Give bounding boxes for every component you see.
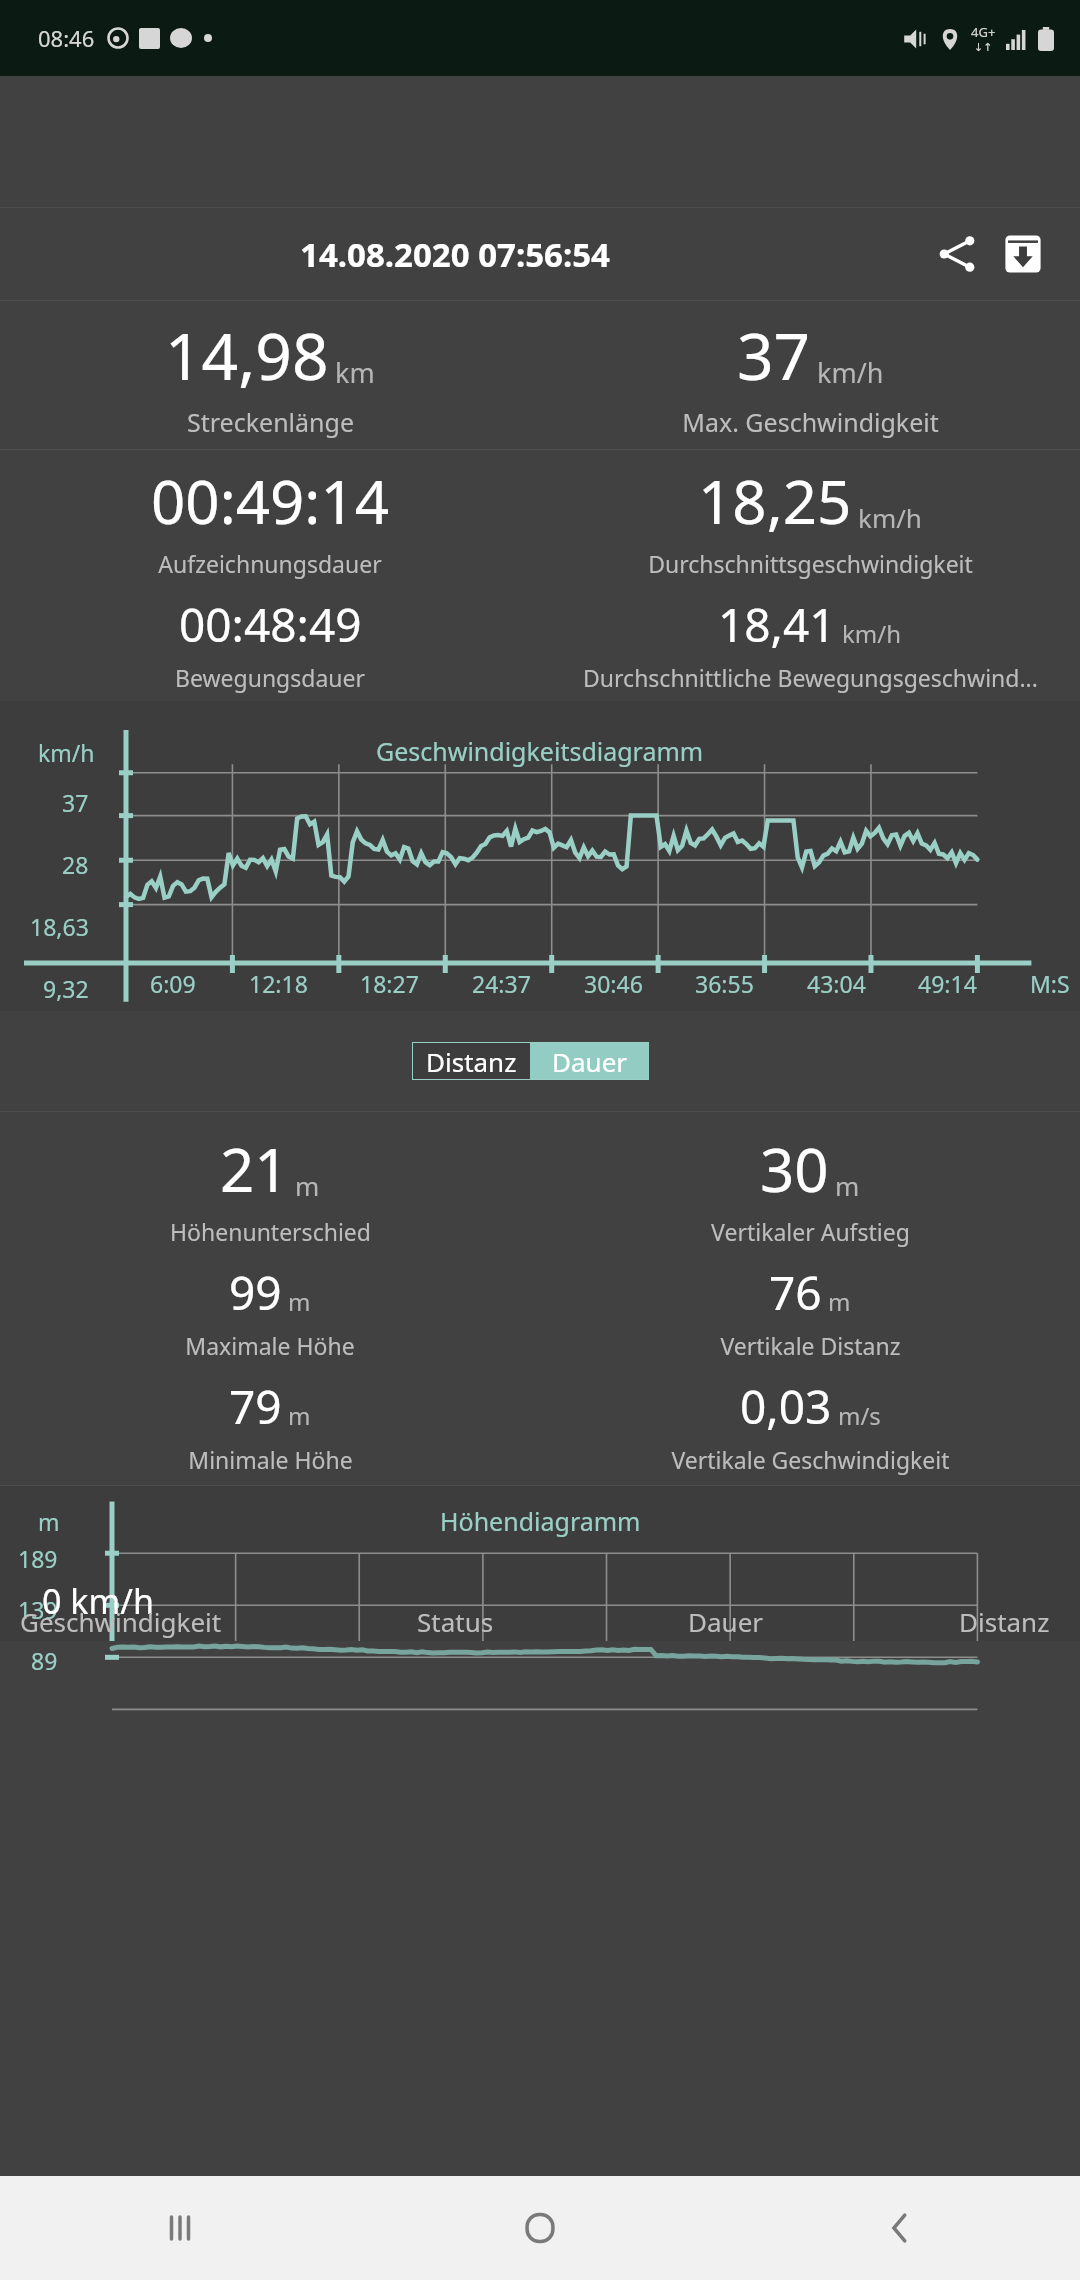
staticText: km/h	[817, 354, 884, 391]
staticText: km/h	[858, 500, 922, 535]
staticText: m	[288, 1285, 311, 1318]
staticText: 14.08.2020 07:56:54	[300, 232, 610, 277]
staticText: 99	[229, 1261, 282, 1324]
staticText: 30	[760, 1128, 829, 1210]
staticText: Maximale Höhe	[185, 1330, 355, 1361]
staticText: 08:46	[38, 23, 95, 53]
staticText: Höhenunterschied	[170, 1216, 371, 1247]
staticText: m	[288, 1399, 311, 1432]
staticText: 21	[220, 1128, 289, 1210]
staticText: km/h	[842, 617, 902, 650]
staticText: 9,32	[43, 973, 89, 1004]
button[interactable]: Home	[360, 2176, 720, 2280]
staticText: Vertikaler Aufstieg	[711, 1216, 910, 1247]
button[interactable]: Dauer	[530, 1042, 649, 1080]
staticText: 4G+	[971, 23, 996, 41]
staticText: Distanz	[959, 1604, 1050, 1639]
staticText: 28	[62, 849, 89, 880]
staticText: m	[38, 1506, 60, 1537]
staticText: Streckenlänge	[187, 405, 354, 439]
staticText: Minimale Höhe	[188, 1444, 353, 1475]
staticText: 14,98	[165, 312, 329, 399]
staticText: Distanz	[426, 1044, 517, 1079]
staticText: 89	[31, 1645, 58, 1676]
staticText: 18,25	[698, 460, 852, 542]
staticText: km	[335, 354, 375, 391]
staticText: 30:46	[584, 968, 643, 999]
staticText: Höhendiagramm	[440, 1504, 641, 1538]
staticText: 189	[18, 1543, 58, 1574]
staticText: Aufzeichnungsdauer	[158, 548, 382, 579]
staticText: 00:48:49	[179, 593, 362, 656]
staticText: Durchschnittliche Bewegungsgeschwind...	[583, 662, 1038, 693]
staticText: Geschwindigkeit	[20, 1604, 222, 1639]
staticText: Max. Geschwindigkeit	[682, 405, 939, 439]
staticText: ↓↑	[974, 41, 993, 54]
staticText: Status	[417, 1604, 494, 1639]
staticText: 18:27	[360, 968, 419, 999]
staticText: Dauer	[552, 1044, 628, 1079]
staticText: m	[828, 1285, 851, 1318]
staticText: 139	[18, 1594, 58, 1625]
staticText: 24:37	[472, 968, 531, 999]
button[interactable]: Download	[992, 223, 1054, 285]
staticText: 18,63	[30, 911, 89, 942]
staticText: m	[295, 1168, 320, 1203]
staticText: Bewegungsdauer	[175, 662, 365, 693]
staticText: 36:55	[695, 968, 754, 999]
staticText: 0 km/h	[42, 1578, 154, 1624]
staticText: Durchschnittsgeschwindigkeit	[648, 548, 973, 579]
staticText: 79	[229, 1375, 282, 1438]
staticText: 18,41	[718, 593, 836, 656]
staticText: 12:18	[249, 968, 308, 999]
button[interactable]: Recent apps	[0, 2176, 360, 2280]
staticText: Geschwindigkeitsdiagramm	[376, 734, 704, 768]
button[interactable]: Distanz	[412, 1042, 530, 1080]
staticText: km/h	[38, 737, 95, 768]
staticText: 0,03	[740, 1375, 832, 1438]
staticText: Vertikale Geschwindigkeit	[671, 1444, 950, 1475]
staticText: m/s	[838, 1399, 881, 1432]
staticText: 76	[769, 1261, 822, 1324]
staticText: 43:04	[807, 968, 866, 999]
staticText: 37	[62, 787, 89, 818]
staticText: 49:14	[918, 968, 977, 999]
staticText: 00:49:14	[151, 460, 390, 542]
button[interactable]: Back	[720, 2176, 1080, 2280]
staticText: Dauer	[688, 1604, 764, 1639]
staticText: 6:09	[150, 968, 196, 999]
button[interactable]: Share	[926, 223, 988, 285]
staticText: m	[835, 1168, 860, 1203]
staticText: Vertikale Distanz	[720, 1330, 901, 1361]
staticText: M:S	[1030, 968, 1070, 999]
staticText: 37	[737, 312, 811, 399]
